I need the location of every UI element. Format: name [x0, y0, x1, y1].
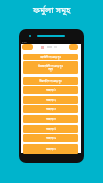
button[interactable]: Back	[22, 44, 33, 50]
staticText: অধ্যায় ২	[46, 98, 56, 102]
button[interactable]: অধ্যায় ২	[23, 96, 78, 104]
staticText: 4:28	[22, 41, 27, 44]
staticText: ফর্মুলা সমূহ	[33, 5, 71, 16]
staticText: অধ্যায় ৭	[46, 147, 56, 151]
button[interactable]: অধ্যায় ৪	[23, 115, 78, 123]
button[interactable]: অধ্যায় ১	[23, 86, 78, 94]
staticText: অধ্যায় ১	[46, 88, 56, 92]
staticText: জ্যামিতি সংক্রান্ত সূত্র	[40, 56, 61, 59]
button[interactable]: অধ্যায় ৭	[23, 144, 78, 154]
staticText: অধ্যায় ৩	[46, 107, 56, 111]
button[interactable]: More	[69, 44, 78, 50]
staticText: অধ্যায় ৬	[46, 136, 56, 140]
staticText: বীজগণিত সংক্রান্ত সূত্র	[39, 80, 62, 83]
button[interactable]: বীজগণিত সংক্রান্ত সূত্র	[23, 77, 78, 85]
staticText: অধ্যায় ৪	[46, 117, 56, 121]
staticText: ত্রিকোণমিতি সংক্রান্ত সূত্র সমূহ	[38, 65, 63, 71]
staticText: অধ্যায় ৫	[46, 127, 56, 131]
button[interactable]: অধ্যায় ৫	[23, 125, 78, 133]
button[interactable]: অধ্যায় ৬	[23, 134, 78, 142]
button[interactable]: জ্যামিতি সংক্রান্ত সূত্র	[23, 54, 78, 60]
button[interactable]: অধ্যায় ৩	[23, 105, 78, 113]
button[interactable]: ত্রিকোণমিতি সংক্রান্ত সূত্র সমূহ	[23, 61, 78, 74]
